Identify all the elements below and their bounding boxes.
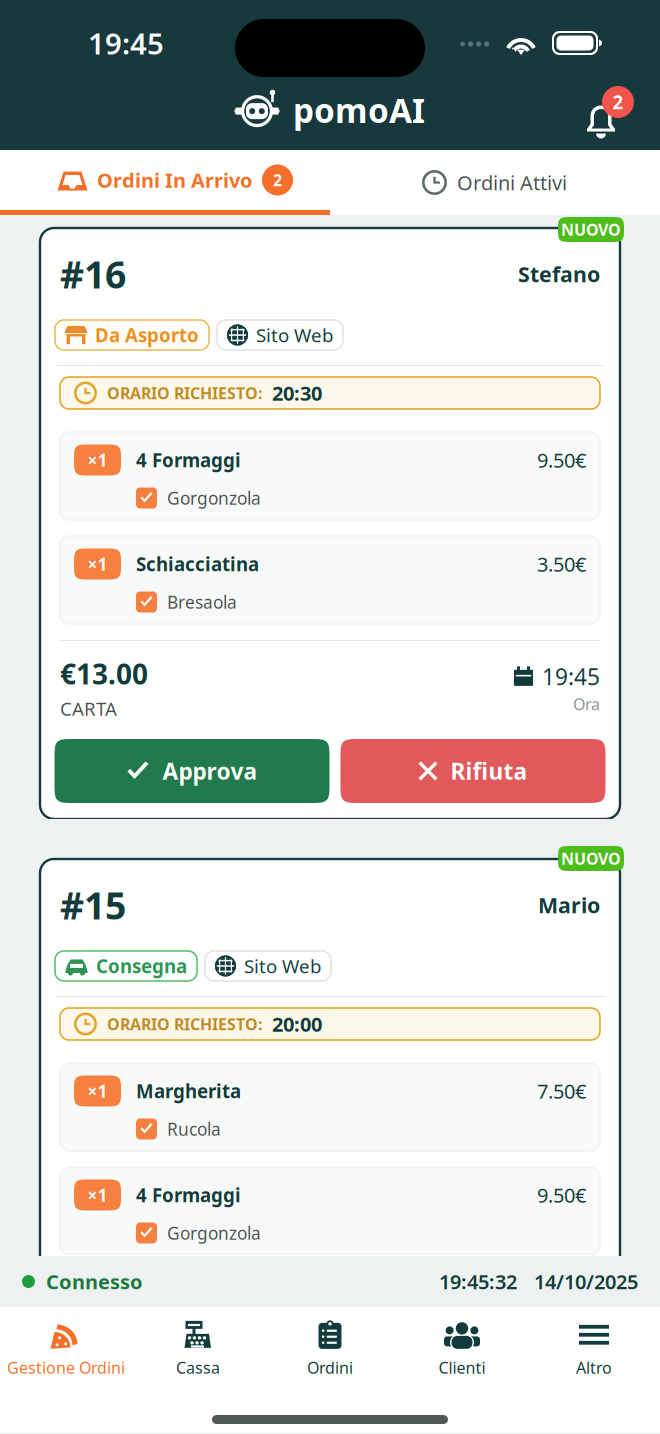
staticText: CARTA (60, 696, 117, 721)
staticText: 7.50€ (537, 1078, 586, 1104)
staticText: pomoAI (293, 88, 425, 132)
staticText: Bresaola (167, 590, 237, 613)
staticText: Da Asporto (95, 323, 199, 347)
staticText: Altro (576, 1357, 612, 1378)
staticText: Approva (162, 756, 257, 786)
staticText: #15 (60, 880, 126, 930)
staticText: NUOVO (561, 219, 621, 240)
staticText: ORARIO RICHIESTO: (107, 382, 262, 404)
button[interactable]: Rifiuta (340, 739, 605, 803)
staticText: Sito Web (244, 954, 321, 978)
staticText: 4 Formaggi (136, 1183, 241, 1207)
staticText: ORARIO RICHIESTO: (107, 1013, 262, 1034)
staticText: Margherita (136, 1079, 241, 1103)
staticText: Clienti (438, 1357, 485, 1378)
staticText: 20:00 (272, 1011, 322, 1037)
staticText: Gestione Ordini (7, 1357, 125, 1378)
staticText: 9.50€ (537, 447, 586, 473)
button[interactable]: Gestione Ordini (0, 1307, 132, 1389)
staticText: 3.50€ (537, 551, 586, 577)
staticText: Schiacciatina (136, 552, 259, 576)
staticText: Ordini In Arrivo (97, 167, 253, 193)
button[interactable]: Altro (528, 1307, 660, 1389)
staticText: 2 (273, 169, 282, 191)
staticText: ×1 (87, 448, 107, 471)
staticText: 9.50€ (537, 1182, 586, 1208)
staticText: Cassa (176, 1357, 220, 1378)
staticText: Sito Web (256, 323, 333, 347)
staticText: Ordini Attivi (457, 169, 567, 196)
staticText: 19:45:32 (439, 1268, 517, 1295)
staticText: Rifiuta (450, 756, 527, 786)
staticText: 20:30 (272, 380, 322, 406)
staticText: NUOVO (561, 848, 621, 869)
button[interactable]: Ordini (264, 1307, 396, 1389)
staticText: Stefano (518, 260, 600, 288)
staticText: Ordini (307, 1357, 353, 1378)
button[interactable]: Ordini In Arrivo (0, 150, 330, 215)
staticText: Connesso (46, 1268, 143, 1295)
staticText: ×1 (87, 1079, 107, 1102)
staticText: ×1 (87, 552, 107, 575)
staticText: 2 (612, 90, 623, 114)
staticText: Ora (573, 693, 600, 715)
staticText: 19:45 (88, 23, 164, 62)
staticText: Gorgonzola (167, 1221, 261, 1244)
staticText: ×1 (87, 1183, 107, 1206)
staticText: 19:45 (542, 661, 600, 691)
button[interactable]: Notifiche (572, 86, 638, 144)
staticText: Gorgonzola (167, 486, 261, 509)
button[interactable]: Approva (54, 739, 329, 803)
staticText: 4 Formaggi (136, 448, 241, 472)
button[interactable]: Ordini Attivi (330, 150, 660, 215)
button[interactable]: Clienti (396, 1307, 528, 1389)
button[interactable]: Cassa (132, 1307, 264, 1389)
staticText: 14/10/2025 (534, 1268, 638, 1295)
staticText: Mario (538, 891, 600, 919)
staticText: #16 (60, 249, 126, 299)
staticText: €13.00 (60, 655, 148, 692)
staticText: Consegna (96, 954, 187, 978)
staticText: Rucola (167, 1117, 221, 1140)
